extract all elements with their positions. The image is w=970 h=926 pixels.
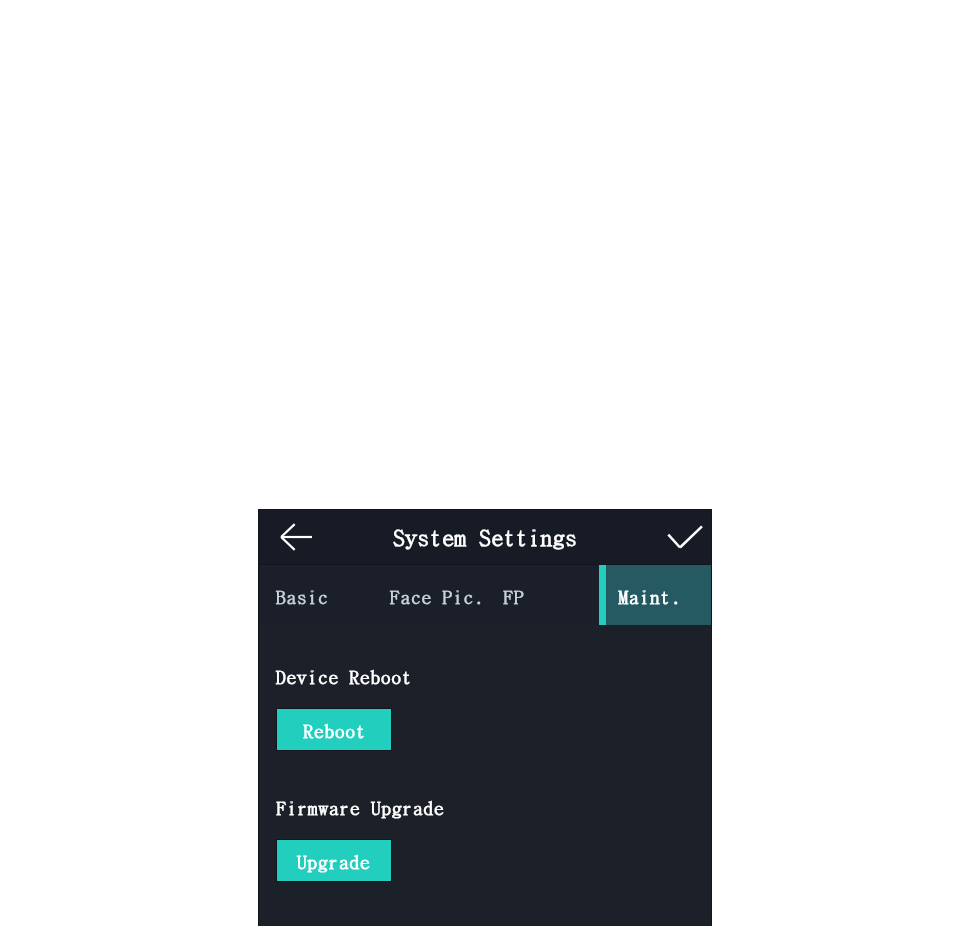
- button[interactable]: Upgrade: [276, 839, 392, 882]
- button[interactable]: Face Pic.: [371, 565, 486, 625]
- staticText: System Settings: [393, 520, 578, 553]
- staticText: FP: [503, 582, 524, 609]
- button[interactable]: Basic: [258, 565, 371, 625]
- button[interactable]: Maint.: [599, 565, 712, 625]
- staticText: Device Reboot: [276, 662, 413, 689]
- staticText: Reboot: [303, 716, 366, 743]
- staticText: Face Pic.: [390, 582, 485, 609]
- button[interactable]: FP: [486, 565, 599, 625]
- staticText: Maint.: [618, 582, 681, 609]
- button[interactable]: Back: [270, 513, 321, 560]
- button[interactable]: Reboot: [276, 708, 392, 751]
- staticText: Upgrade: [297, 847, 371, 874]
- button[interactable]: Confirm: [659, 525, 710, 555]
- staticText: Basic: [276, 582, 329, 609]
- staticText: Firmware Upgrade: [276, 793, 444, 820]
